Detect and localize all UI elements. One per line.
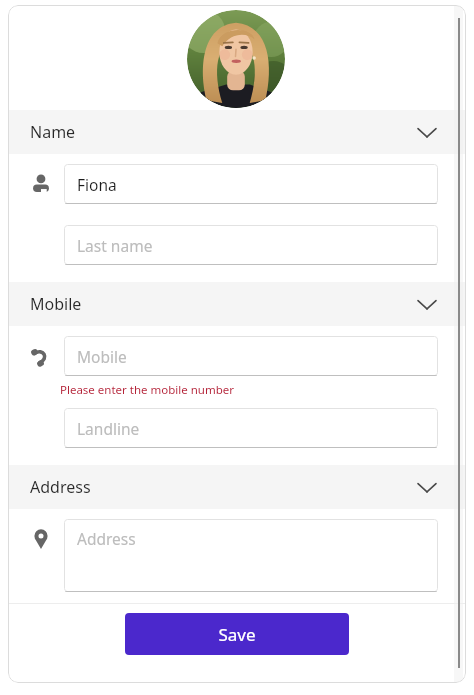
button[interactable]: Last name (64, 225, 438, 265)
other: Name (30, 173, 52, 195)
button[interactable]: Name (8, 110, 466, 154)
button[interactable]: Profile photo (187, 10, 285, 108)
staticText: Mobile (77, 346, 127, 367)
staticText: Landline (77, 418, 140, 439)
button[interactable]: Landline (64, 408, 438, 448)
button[interactable]: Fiona (64, 164, 438, 204)
staticText: Save (218, 623, 256, 646)
staticText: Name (30, 121, 76, 143)
staticText: Please enter the mobile number (60, 382, 235, 398)
staticText: Last name (77, 235, 153, 256)
button[interactable]: Address (64, 519, 438, 592)
button[interactable]: Save (125, 613, 349, 655)
button[interactable]: Address (8, 465, 466, 509)
staticText: Mobile (30, 293, 82, 315)
staticText: Fiona (77, 174, 117, 195)
staticText: Address (30, 476, 91, 498)
staticText: Address (77, 528, 136, 549)
button[interactable]: Mobile (8, 282, 466, 326)
other: Mobile (30, 345, 52, 367)
button[interactable]: Mobile (64, 336, 438, 376)
other: Address (30, 528, 52, 550)
